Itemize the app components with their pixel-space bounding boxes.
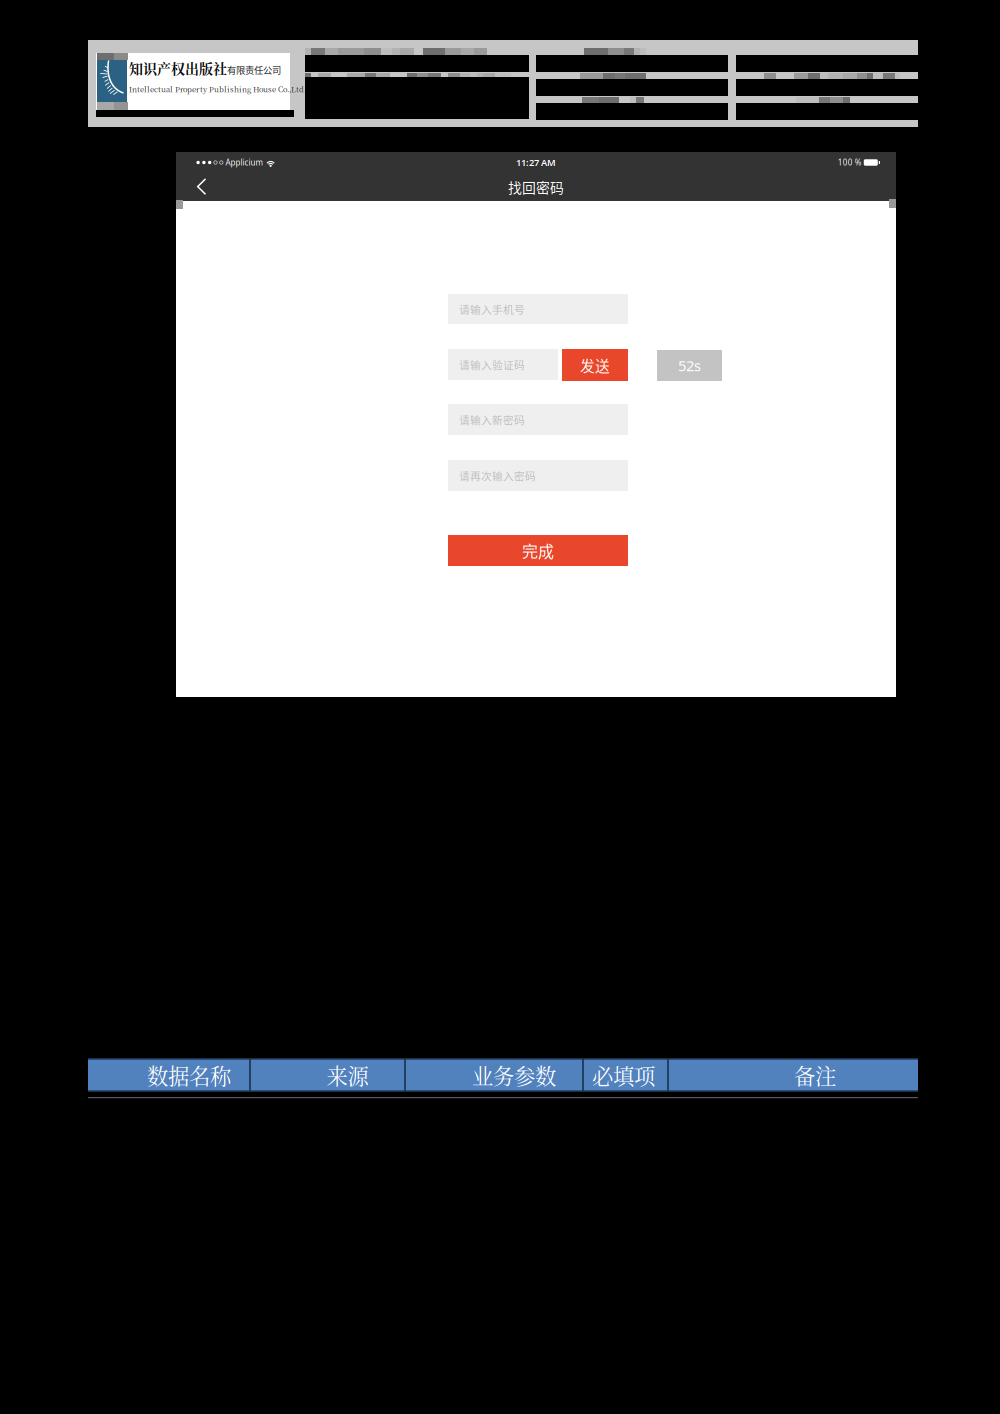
staticText: 备注 <box>794 1060 836 1090</box>
staticText: 请输入手机号 <box>459 301 525 317</box>
staticText: 11:27 AM <box>516 156 556 169</box>
button[interactable]: 请输入手机号 <box>448 294 628 324</box>
staticText: 请输入新密码 <box>459 412 525 427</box>
button[interactable]: 完成 <box>448 535 628 566</box>
staticText: 100 % <box>838 157 862 168</box>
button[interactable]: Back <box>184 173 220 201</box>
staticText: 52s <box>678 356 701 375</box>
staticText: 找回密码 <box>508 177 564 197</box>
staticText: 请再次输入密码 <box>459 468 536 483</box>
button[interactable]: 请输入验证码 <box>448 349 558 380</box>
staticText: Intellectual Property Publishing House C… <box>129 83 306 94</box>
staticText: 发送 <box>580 354 610 376</box>
staticText: 完成 <box>522 539 554 562</box>
staticText: 业务参数 <box>472 1060 556 1090</box>
button[interactable]: 请再次输入密码 <box>448 460 628 491</box>
staticText: 请输入验证码 <box>459 357 525 372</box>
staticText: 必填项 <box>592 1060 655 1090</box>
button[interactable]: 52s <box>657 350 722 381</box>
staticText: 数据名称 <box>147 1060 231 1090</box>
button[interactable]: 请输入新密码 <box>448 404 628 435</box>
staticText: 来源 <box>326 1060 368 1090</box>
staticText: Applicium <box>223 157 262 168</box>
staticText: 知识产权出版社 <box>129 58 227 78</box>
button[interactable]: 发送 <box>562 349 628 381</box>
staticText: 有限责任公司 <box>227 63 281 76</box>
